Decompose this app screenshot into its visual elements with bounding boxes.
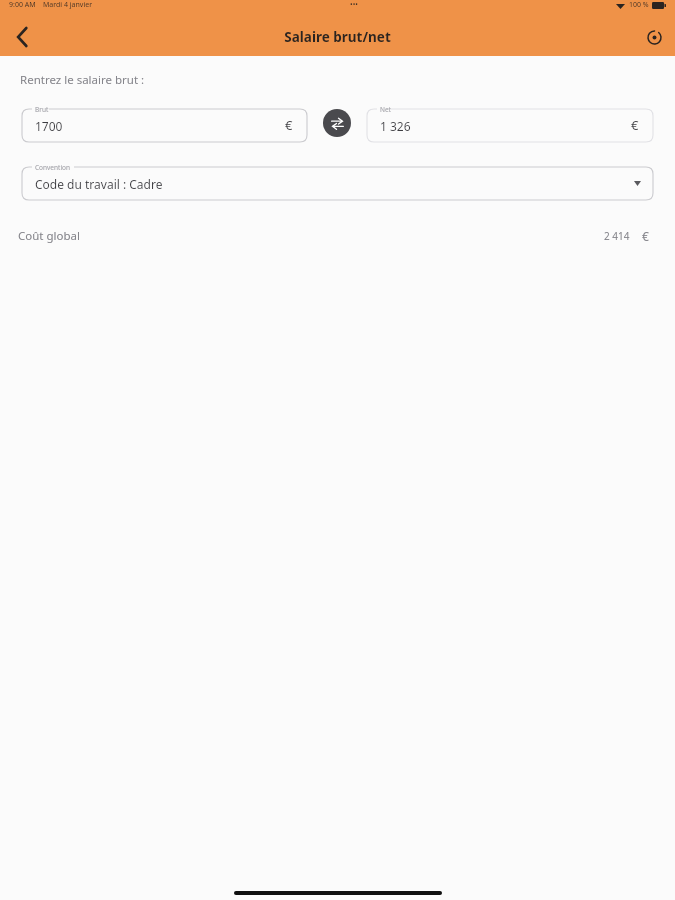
staticText: €	[631, 116, 639, 134]
staticText: •••	[350, 0, 358, 10]
staticText: Code du travail : Cadre	[35, 176, 163, 192]
staticText: 2 414	[604, 229, 630, 243]
button[interactable]: Swap	[323, 109, 351, 137]
staticText: Brut	[35, 105, 49, 114]
button[interactable]: Back	[0, 18, 44, 56]
staticText: 9:00 AM	[9, 0, 36, 10]
staticText: 1 326	[380, 118, 411, 134]
button[interactable]: Convention	[22, 162, 653, 200]
staticText: €	[285, 116, 293, 134]
button[interactable]: Net	[367, 104, 653, 142]
button[interactable]: History	[633, 18, 675, 56]
staticText: Rentrez le salaire brut :	[20, 72, 145, 88]
staticText: Coût global	[18, 228, 80, 244]
staticText: 1700	[35, 118, 63, 134]
staticText: Salaire brut/net	[284, 28, 391, 46]
staticText: Mardi 4 janvier	[43, 0, 93, 10]
staticText: 100 %	[629, 0, 649, 10]
staticText: €	[642, 228, 649, 244]
staticText: Convention	[35, 163, 71, 172]
staticText: Net	[380, 105, 391, 114]
button[interactable]: Brut	[22, 104, 307, 142]
button[interactable]: Coût global	[0, 228, 675, 244]
